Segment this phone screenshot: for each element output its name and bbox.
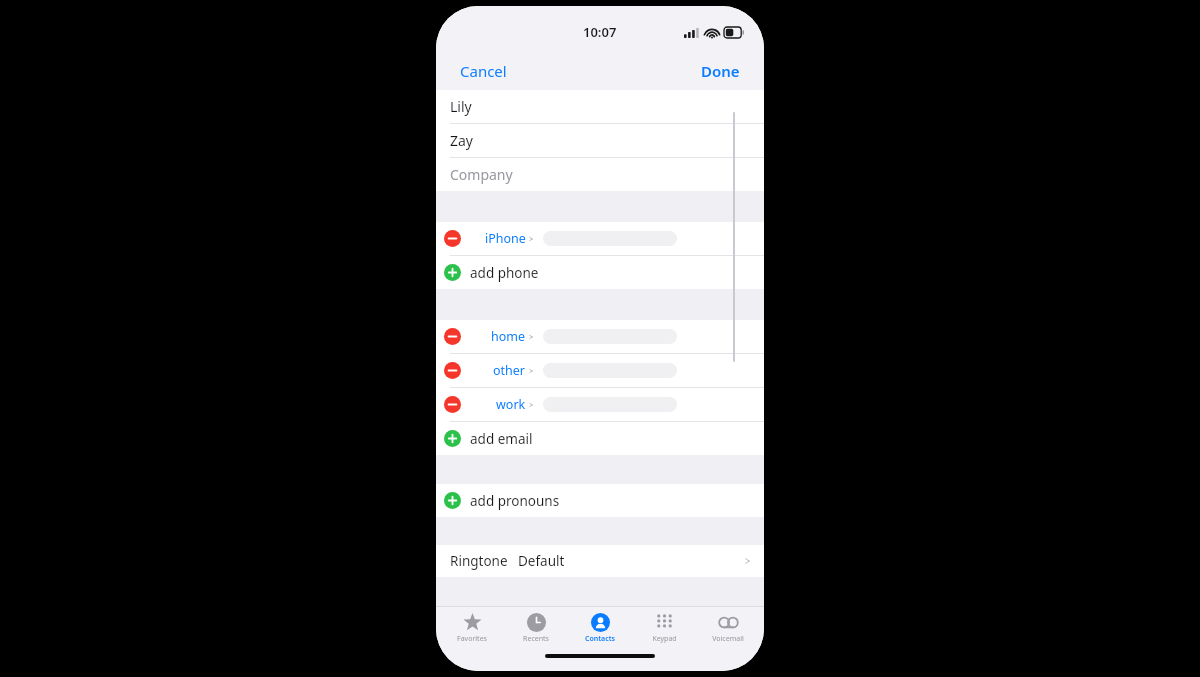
button[interactable]: Keypad [636,613,692,644]
button[interactable]: Done [677,55,764,87]
button[interactable]: Voicemail [700,613,756,644]
other: Remove field [444,328,461,345]
staticText: work [496,396,526,413]
staticText: add pronouns [470,492,560,510]
staticText: Favorites [457,634,487,644]
staticText: Default [518,552,565,570]
button[interactable]: Company [436,158,764,191]
staticText: Cancel [460,61,507,81]
button[interactable]: Add field [436,422,764,455]
button[interactable]: Favorites [444,613,500,644]
button[interactable]: Ringtone [436,545,764,577]
other: Remove field [444,396,461,413]
staticText: 10:07 [583,23,617,41]
button[interactable]: Add field [436,484,764,517]
button[interactable]: Remove field [436,320,764,353]
button[interactable]: Recents [508,613,564,644]
other: Add field [444,430,461,447]
button[interactable]: Lily [436,90,764,123]
button[interactable]: Add field [436,256,764,289]
staticText: Contacts [585,634,615,644]
button[interactable]: Contacts [572,613,628,644]
staticText: Done [701,61,740,81]
staticText: Zay [450,131,474,150]
other: Remove field [444,230,461,247]
staticText: iPhone [485,230,526,247]
staticText: Keypad [652,634,677,644]
button[interactable]: Remove field [436,222,764,255]
staticText: other [493,362,526,379]
staticText: home [491,328,526,345]
staticText: Company [450,165,513,184]
button[interactable]: Remove field [436,354,764,387]
button[interactable]: Remove field [436,388,764,421]
staticText: Recents [523,634,549,644]
button[interactable]: Cancel [436,55,531,87]
staticText: add phone [470,264,539,282]
button[interactable]: Zay [436,124,764,157]
other: Add field [444,264,461,281]
other: Remove field [444,362,461,379]
staticText: Lily [450,97,472,116]
staticText: Ringtone [450,552,508,570]
staticText: Voicemail [712,634,744,644]
staticText: add email [470,430,533,448]
other: Add field [444,492,461,509]
